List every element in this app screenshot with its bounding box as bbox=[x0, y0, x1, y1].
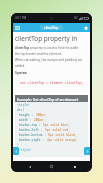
staticText: clientTop bbox=[44, 25, 59, 30]
staticText: </style> bbox=[17, 148, 32, 152]
button[interactable]: Back bbox=[25, 162, 34, 171]
staticText: 5px solid blue; bbox=[43, 123, 71, 127]
staticText: } bbox=[17, 143, 19, 147]
button[interactable]: Menu bbox=[14, 24, 21, 31]
staticText: 200px; bbox=[36, 113, 47, 117]
staticText: border-left : bbox=[19, 128, 45, 132]
button[interactable]: Home bbox=[47, 162, 56, 171]
staticText: property is used to find the width betwe… bbox=[30, 46, 88, 50]
staticText: the top border and the element. bbox=[15, 52, 62, 56]
staticText: border-top : bbox=[19, 123, 43, 127]
button[interactable]: Next bbox=[84, 147, 90, 155]
staticText: 200px; bbox=[34, 118, 45, 122]
staticText: 5px solid black; bbox=[48, 133, 77, 137]
staticText: added. bbox=[15, 64, 26, 68]
staticText: clientTop bbox=[15, 46, 30, 50]
button[interactable]: Recents bbox=[70, 162, 79, 171]
staticText: 5px solid red; bbox=[45, 128, 71, 132]
staticText: border-bottom : bbox=[19, 133, 48, 137]
button[interactable]: Home bbox=[82, 24, 89, 31]
staticText: clientTop property in javascript bbox=[15, 34, 88, 43]
staticText: 4px solid orange; bbox=[47, 138, 78, 142]
staticText: div{ bbox=[17, 108, 25, 112]
staticText: Example: Get clientTop of an element bbox=[17, 97, 79, 101]
staticText: Syntax bbox=[15, 70, 27, 75]
staticText: height : bbox=[19, 113, 36, 117]
staticText: 4:01 PM bbox=[15, 16, 27, 20]
staticText: 4G bbox=[74, 16, 78, 20]
button[interactable]: Previous bbox=[13, 147, 19, 155]
staticText: <style> bbox=[17, 103, 30, 107]
staticText: When calculating, the margin and padding… bbox=[15, 58, 88, 62]
staticText: var clientTop = element.clientTop; bbox=[20, 81, 84, 85]
staticText: width : bbox=[19, 118, 34, 122]
staticText: <script> bbox=[17, 156, 32, 157]
staticText: border-right : bbox=[19, 138, 47, 142]
